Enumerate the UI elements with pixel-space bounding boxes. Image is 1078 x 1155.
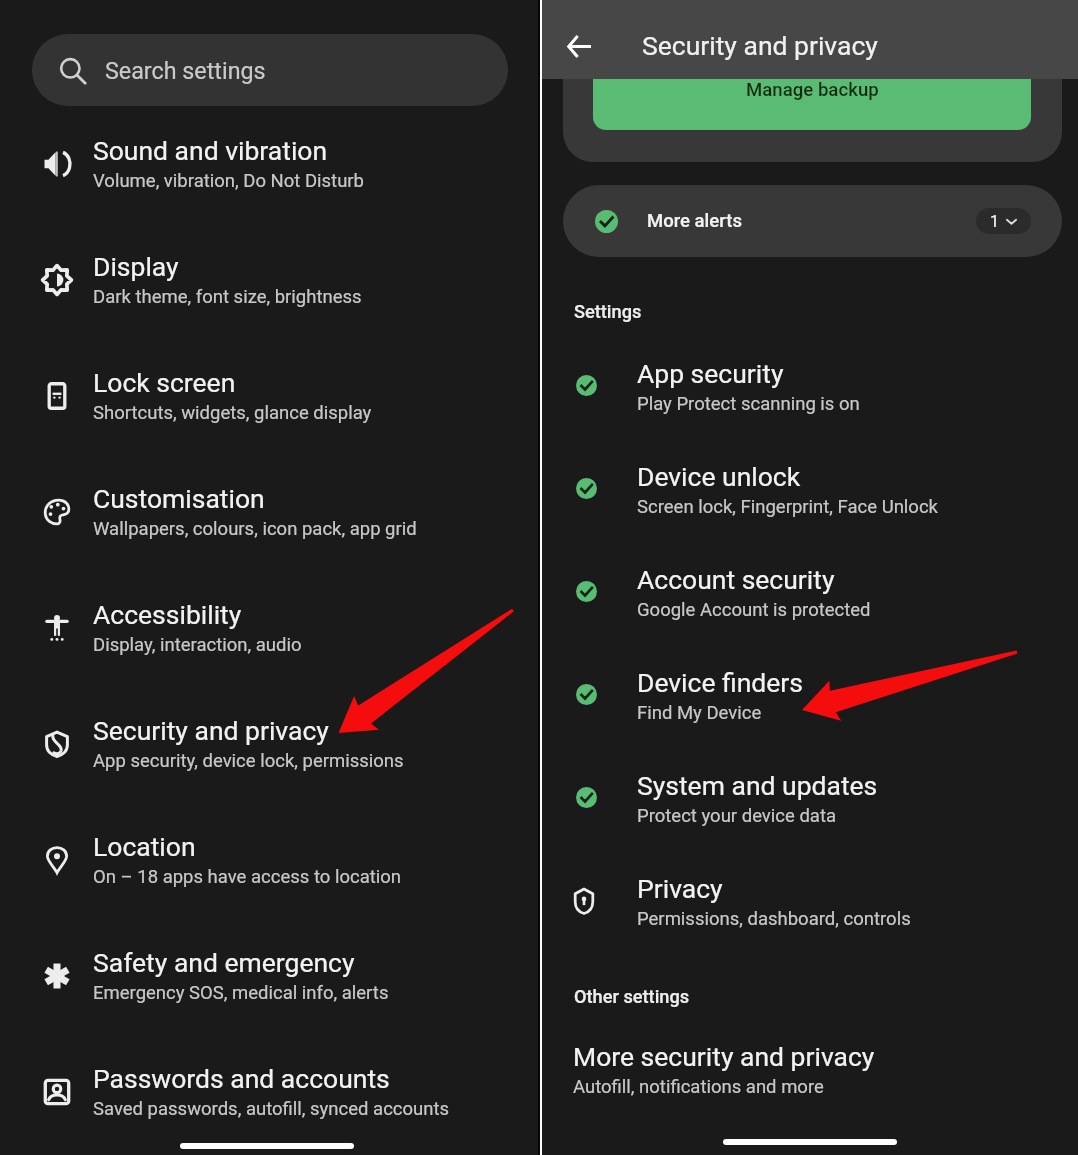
button[interactable]: Display — [0, 230, 539, 330]
button[interactable]: More alerts — [563, 185, 1062, 257]
staticText: Device unlock — [637, 461, 801, 492]
button[interactable]: Manage backup — [593, 20, 1031, 130]
button[interactable]: Privacy — [542, 851, 1078, 951]
button[interactable]: Account security — [542, 542, 1078, 642]
button[interactable]: Customisation — [0, 462, 539, 562]
staticText: Permissions, dashboard, controls — [637, 908, 911, 930]
button[interactable]: Location — [0, 810, 539, 910]
button[interactable]: Sound and vibration — [0, 114, 539, 214]
staticText: Sound and vibration — [93, 135, 328, 166]
staticText: Passwords and accounts — [93, 1063, 390, 1094]
staticText: Display — [93, 251, 179, 282]
button[interactable]: Passwords and accounts — [0, 1042, 539, 1142]
staticText: Find My Device — [637, 702, 762, 724]
button[interactable]: Lock screen — [0, 346, 539, 446]
staticText: Device finders — [637, 667, 804, 698]
button[interactable]: Device unlock — [542, 439, 1078, 539]
staticText: Screen lock, Fingerprint, Face Unlock — [637, 496, 938, 518]
staticText: Display, interaction, audio — [93, 634, 302, 656]
staticText: Security and privacy — [93, 715, 329, 746]
button[interactable]: System and updates — [542, 748, 1078, 848]
staticText: Play Protect scanning is on — [637, 393, 860, 415]
button[interactable]: Search settings — [32, 34, 508, 106]
staticText: Google Account is protected — [637, 599, 871, 621]
button[interactable]: Device finders — [542, 645, 1078, 745]
button[interactable]: 1 alert, expand — [976, 208, 1031, 234]
button[interactable]: Back — [553, 20, 605, 72]
staticText: Shortcuts, widgets, glance display — [93, 402, 372, 424]
button[interactable]: Safety and emergency — [0, 926, 539, 1026]
staticText: App security — [637, 358, 784, 389]
staticText: On – 18 apps have access to location — [93, 866, 402, 888]
button[interactable]: More security and privacy — [573, 1041, 875, 1098]
staticText: Safety and emergency — [93, 947, 355, 978]
button[interactable]: App security — [542, 336, 1078, 436]
staticText: Saved passwords, autofill, synced accoun… — [93, 1098, 450, 1120]
button[interactable]: Security and privacy — [0, 694, 539, 794]
staticText: Location — [93, 831, 196, 862]
staticText: System and updates — [637, 770, 878, 801]
staticText: Search settings — [105, 57, 266, 84]
staticText: App security, device lock, permissions — [93, 750, 404, 772]
staticText: Dark theme, font size, brightness — [93, 286, 362, 308]
staticText: Settings — [574, 301, 642, 322]
staticText: Accessibility — [93, 599, 242, 630]
staticText: Manage backup — [746, 79, 879, 101]
staticText: Autofill, notifications and more — [573, 1076, 824, 1098]
staticText: Lock screen — [93, 367, 236, 398]
staticText: 1 — [990, 212, 999, 231]
staticText: Privacy — [637, 873, 723, 904]
staticText: Account security — [637, 564, 835, 595]
staticText: Wallpapers, colours, icon pack, app grid — [93, 518, 417, 540]
staticText: Volume, vibration, Do Not Disturb — [93, 170, 365, 192]
button[interactable]: Accessibility — [0, 578, 539, 678]
staticText: More security and privacy — [573, 1041, 875, 1072]
staticText: Other settings — [574, 986, 690, 1007]
staticText: More alerts — [647, 210, 742, 232]
staticText: Customisation — [93, 483, 265, 514]
staticText: Security and privacy — [642, 30, 878, 61]
staticText: Protect your device data — [637, 805, 837, 827]
staticText: Emergency SOS, medical info, alerts — [93, 982, 389, 1004]
